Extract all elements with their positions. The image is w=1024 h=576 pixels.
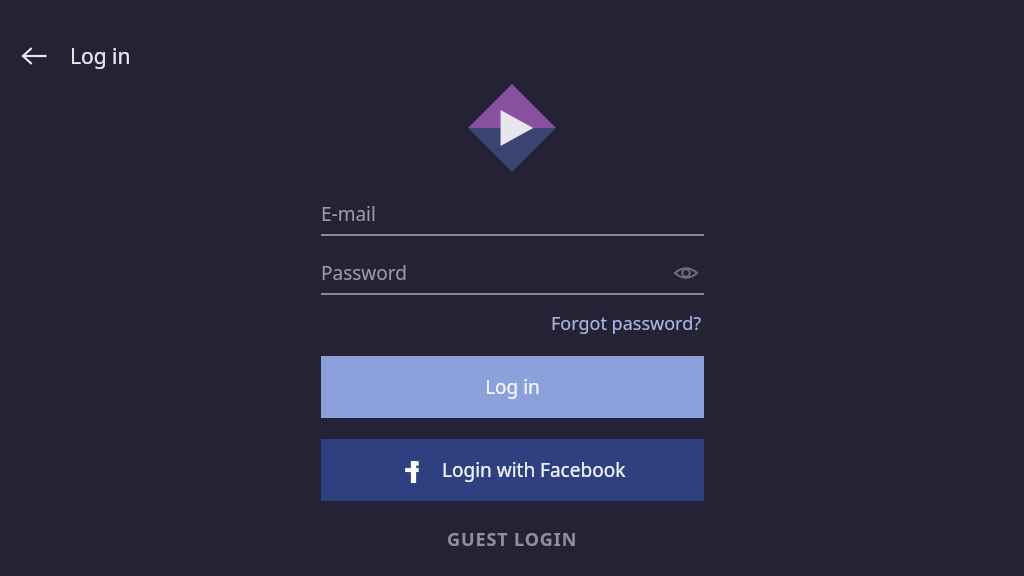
button[interactable]: Show password [668, 255, 704, 291]
staticText: Forgot password? [551, 311, 702, 336]
button[interactable]: Back [10, 32, 58, 80]
staticText: Password [321, 260, 407, 286]
staticText: E-mail [321, 201, 376, 227]
staticText: Log in [485, 374, 540, 400]
button[interactable]: E-mail [321, 194, 704, 234]
staticText: Login with Facebook [442, 457, 626, 483]
staticText: Log in [70, 42, 131, 71]
button[interactable]: GUEST LOGIN [321, 517, 704, 561]
staticText: GUEST LOGIN [447, 527, 578, 552]
button[interactable]: Forgot password? [549, 305, 704, 342]
button[interactable]: Log in [321, 356, 704, 418]
button[interactable]: Login with Facebook [321, 439, 704, 501]
button[interactable]: Password [321, 253, 704, 293]
